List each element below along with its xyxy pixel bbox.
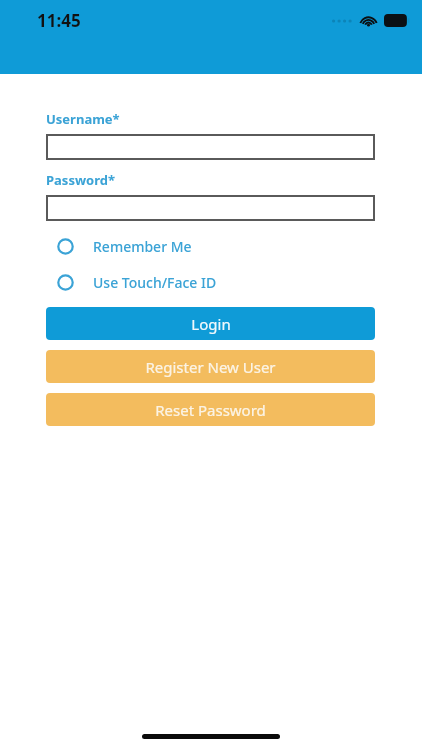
button[interactable]: [46, 195, 375, 221]
staticText: Reset Password: [155, 400, 266, 420]
button[interactable]: Use Touch/Face ID: [46, 271, 375, 293]
button[interactable]: Reset Password: [46, 393, 375, 426]
staticText: Register New User: [145, 357, 276, 377]
button[interactable]: Register New User: [46, 350, 375, 383]
staticText: Login: [191, 314, 231, 334]
staticText: 11:45: [37, 9, 81, 32]
button[interactable]: [46, 134, 375, 160]
staticText: Remember Me: [93, 237, 192, 256]
button[interactable]: Remember Me: [46, 235, 375, 257]
staticText: Use Touch/Face ID: [93, 273, 217, 292]
staticText: Password*: [46, 171, 115, 189]
button[interactable]: Login: [46, 307, 375, 340]
staticText: Username*: [46, 110, 120, 128]
